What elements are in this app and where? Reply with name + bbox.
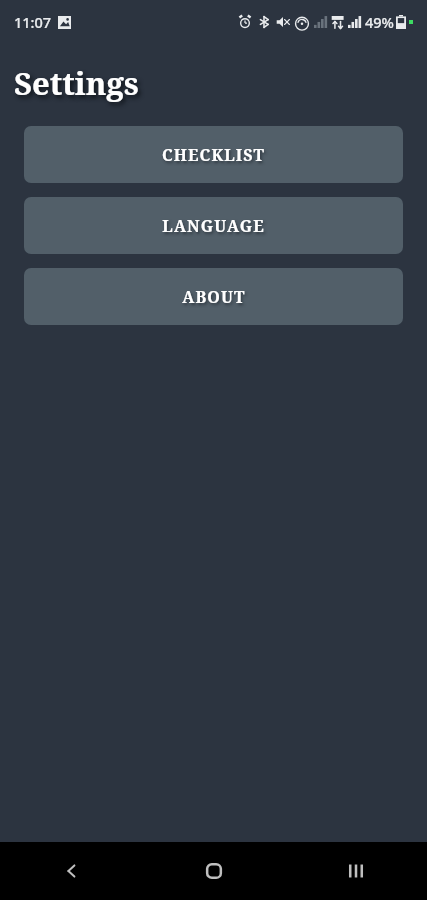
button[interactable]: Home bbox=[143, 842, 285, 900]
button[interactable]: LANGUAGE bbox=[24, 197, 403, 254]
button[interactable]: ABOUT bbox=[24, 268, 403, 325]
staticText: Settings bbox=[14, 62, 139, 104]
button[interactable]: CHECKLIST bbox=[24, 126, 403, 183]
button[interactable]: Back bbox=[0, 842, 143, 900]
staticText: LANGUAGE bbox=[162, 215, 265, 237]
staticText: 11:07 bbox=[14, 12, 52, 32]
staticText: 49% bbox=[365, 12, 394, 32]
button[interactable]: Recent apps bbox=[285, 842, 427, 900]
staticText: CHECKLIST bbox=[162, 144, 265, 166]
staticText: ABOUT bbox=[182, 286, 246, 308]
